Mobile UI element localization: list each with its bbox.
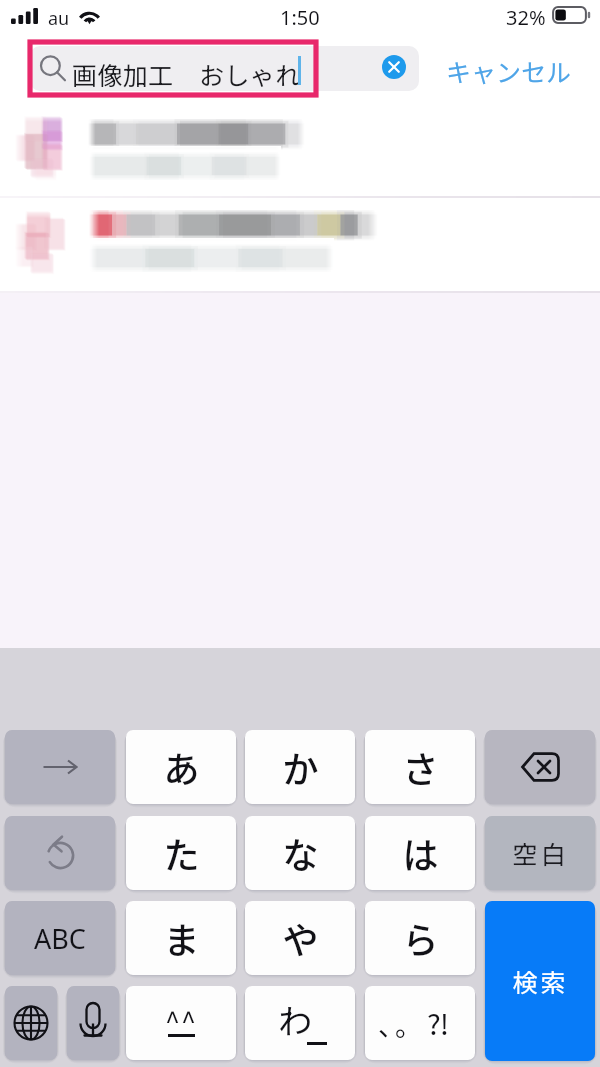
button[interactable] [30,46,419,91]
button[interactable]: わ [245,986,355,1060]
button[interactable]: ら [365,901,475,975]
button[interactable]: や [245,901,355,975]
button[interactable] [0,198,600,293]
staticText: 画像加工 おしゃれ [72,56,301,92]
staticText: ま [163,912,200,964]
staticText: 。 [395,1005,422,1044]
button[interactable]: キャンセル [446,53,572,89]
button[interactable]: 空白 [485,816,595,890]
staticText: や [282,912,319,964]
button[interactable]: Voice input [67,986,119,1060]
staticText: ら [402,912,439,964]
button[interactable]: な [245,816,355,890]
button[interactable]: Clear text [382,55,406,79]
staticText: か [282,741,319,793]
button[interactable]: た [126,816,236,890]
staticText: au [48,6,70,31]
staticText: さ [402,741,439,793]
button[interactable]: Emoticons [126,986,236,1060]
button[interactable]: Change keyboard [5,986,57,1060]
button[interactable] [0,102,600,197]
staticText: 32% [506,4,546,31]
staticText: 、 [378,1005,405,1044]
button[interactable]: Next candidate [5,730,115,804]
button[interactable]: さ [365,730,475,804]
staticText: な [282,827,319,879]
button[interactable]: Punctuation [365,986,475,1060]
button[interactable]: ま [126,901,236,975]
staticText: あ [163,741,200,793]
button[interactable]: Undo [5,816,115,890]
staticText: 1:50 [280,4,320,31]
staticText: ?! [427,1001,449,1043]
button[interactable]: は [365,816,475,890]
staticText: た [163,827,200,879]
button[interactable]: Backspace [485,730,595,804]
button[interactable]: あ [126,730,236,804]
staticText: ^^ [165,1001,197,1040]
staticText: 検索 [512,963,569,999]
staticText: わ [278,995,312,1044]
staticText: 空白 [512,835,569,871]
staticText: は [402,827,439,879]
button[interactable]: か [245,730,355,804]
button[interactable]: ABC [5,901,115,975]
staticText: ABC [34,920,86,957]
button[interactable]: 検索 [485,901,595,1061]
